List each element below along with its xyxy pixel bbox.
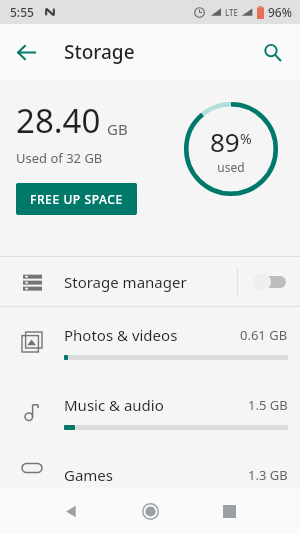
staticText: 89 [210,124,240,159]
staticText: 1.3 GB [248,466,288,484]
button[interactable]: FREE UP SPACE [16,183,137,215]
staticText: LTE [225,7,239,18]
staticText: 0.61 GB [240,326,288,344]
button[interactable]: Games [0,447,300,488]
button[interactable]: Storage manager [0,257,300,306]
staticText: Storage [64,39,135,65]
button[interactable]: Home [131,492,169,530]
staticText: GB [107,119,128,139]
button[interactable]: Back [4,30,48,74]
button[interactable]: Storage manager toggle [238,257,300,306]
staticText: 28.40 [16,98,101,143]
staticText: Games [64,465,114,485]
staticText: Music & audio [64,395,164,415]
staticText: 1.5 GB [248,396,288,414]
button[interactable]: Photos & videos [0,307,300,377]
button[interactable]: Back [52,492,90,530]
staticText: 96% [268,4,292,20]
staticText: 5:55 [10,4,34,20]
button[interactable]: Search [250,30,294,74]
button[interactable]: Music & audio [0,377,300,447]
staticText: FREE UP SPACE [30,191,123,207]
staticText: % [240,129,252,148]
staticText: used [217,159,245,175]
staticText: Storage manager [64,272,237,292]
staticText: Photos & videos [64,325,178,345]
staticText: Used of 32 GB [16,149,103,167]
button[interactable]: Recents [210,492,248,530]
